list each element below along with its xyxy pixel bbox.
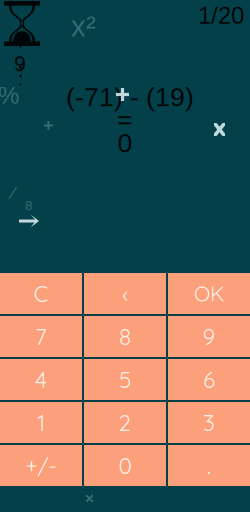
staticText: 2 — [118, 408, 131, 437]
button[interactable]: Delete — [84, 273, 166, 314]
staticText: +/- — [25, 452, 56, 479]
button[interactable]: Clear — [0, 273, 82, 314]
staticText: 5 — [119, 365, 131, 394]
staticText: 8 — [119, 322, 131, 351]
staticText: 4 — [35, 365, 47, 394]
button[interactable]: Toggle sign — [0, 445, 82, 486]
button[interactable]: 3 — [168, 402, 250, 443]
staticText: ‹ — [122, 279, 128, 308]
button[interactable]: 8 — [84, 316, 166, 357]
staticText: 6 — [203, 365, 215, 394]
staticText: x² — [71, 10, 96, 43]
staticText: ⁄ — [12, 183, 15, 202]
button[interactable]: 4 — [0, 359, 82, 400]
staticText: 1/20 — [198, 2, 244, 29]
staticText: . — [207, 451, 211, 480]
button[interactable]: 6 — [168, 359, 250, 400]
staticText: 7 — [35, 322, 47, 351]
staticText: 9 — [202, 322, 215, 351]
staticText: OK — [194, 280, 224, 307]
staticText: 8 — [25, 198, 32, 213]
staticText: C — [33, 279, 48, 308]
button[interactable]: 0 — [84, 445, 166, 486]
button[interactable]: 7 — [0, 316, 82, 357]
staticText: 3 — [203, 408, 215, 437]
button[interactable]: 9 — [168, 316, 250, 357]
staticText: 0 — [117, 128, 132, 158]
staticText: 1 — [37, 408, 45, 437]
staticText: 0 — [118, 451, 131, 480]
button[interactable]: 2 — [84, 402, 166, 443]
staticText: (-71) - (19) — [66, 82, 194, 112]
button[interactable]: 1 — [0, 402, 82, 443]
button[interactable]: 5 — [84, 359, 166, 400]
button[interactable]: Submit — [168, 273, 250, 314]
staticText: % — [0, 82, 19, 109]
staticText: = — [117, 104, 133, 134]
staticText: 9 — [14, 52, 26, 76]
